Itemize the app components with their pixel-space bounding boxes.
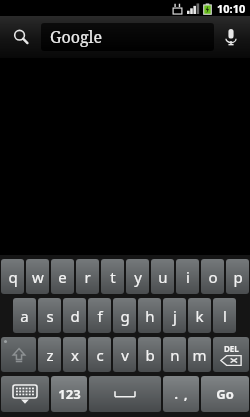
staticText: Google — [50, 26, 103, 48]
button[interactable]: e — [51, 259, 74, 294]
button[interactable]: Go — [201, 376, 249, 412]
staticText: s — [46, 306, 54, 326]
staticText: x — [71, 345, 79, 365]
button[interactable]: c — [88, 337, 111, 372]
staticText: t — [110, 267, 116, 287]
button[interactable]: k — [188, 298, 211, 333]
button[interactable]: d — [63, 298, 86, 333]
staticText: q — [8, 267, 18, 287]
staticText: c — [96, 345, 104, 365]
staticText: 10:10 — [217, 1, 246, 16]
staticText: n — [170, 345, 180, 365]
staticText: v — [121, 345, 129, 365]
staticText: Go — [216, 385, 234, 403]
staticText: d — [70, 306, 80, 326]
button[interactable]: n — [163, 337, 186, 372]
button[interactable]: . , — [163, 376, 199, 412]
button[interactable]: w — [26, 259, 49, 294]
staticText: e — [58, 267, 67, 287]
button[interactable]: r — [76, 259, 99, 294]
button[interactable]: t — [101, 259, 124, 294]
button[interactable]: a — [13, 298, 36, 333]
button[interactable]: g — [113, 298, 136, 333]
button[interactable]: s — [38, 298, 61, 333]
staticText: . , — [174, 386, 188, 402]
staticText: l — [223, 306, 227, 326]
button[interactable]: p — [226, 259, 249, 294]
button[interactable]: f — [88, 298, 111, 333]
button[interactable]: o — [201, 259, 224, 294]
staticText: h — [145, 306, 155, 326]
button[interactable]: u — [151, 259, 174, 294]
staticText: r — [84, 267, 91, 287]
staticText: y — [134, 267, 142, 287]
button[interactable]: y — [126, 259, 149, 294]
staticText: p — [233, 267, 243, 287]
button[interactable]: Shift — [1, 337, 36, 372]
button[interactable]: l — [213, 298, 236, 333]
staticText: m — [192, 345, 207, 365]
button[interactable]: 123 — [51, 376, 87, 412]
staticText: b — [145, 345, 155, 365]
button[interactable]: Search — [6, 22, 36, 52]
button[interactable]: Space — [89, 376, 161, 412]
button[interactable]: v — [113, 337, 136, 372]
staticText: a — [20, 306, 29, 326]
staticText: i — [186, 267, 190, 287]
staticText: o — [208, 267, 218, 287]
button[interactable]: Google — [41, 23, 214, 51]
button[interactable]: j — [163, 298, 186, 333]
button[interactable]: b — [138, 337, 161, 372]
staticText: f — [97, 306, 103, 326]
staticText: g — [120, 306, 130, 326]
button[interactable]: Delete — [213, 337, 249, 372]
button[interactable]: i — [176, 259, 199, 294]
staticText: DEL — [224, 343, 239, 354]
staticText: k — [195, 306, 204, 326]
staticText: z — [46, 345, 54, 365]
button[interactable]: z — [38, 337, 61, 372]
button[interactable]: q — [1, 259, 24, 294]
staticText: 123 — [58, 385, 81, 403]
button[interactable]: h — [138, 298, 161, 333]
button[interactable]: Voice search — [217, 23, 245, 51]
button[interactable]: Hide keyboard — [1, 376, 49, 412]
button[interactable]: x — [63, 337, 86, 372]
staticText: w — [32, 267, 44, 287]
staticText: u — [158, 267, 168, 287]
staticText: j — [173, 306, 177, 326]
button[interactable]: m — [188, 337, 211, 372]
